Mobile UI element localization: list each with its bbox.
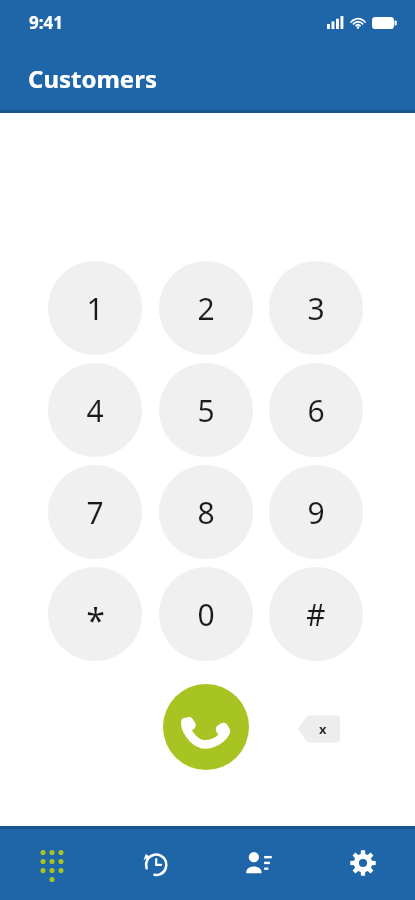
staticText: x [319,720,327,738]
button[interactable]: Contacts [207,826,311,900]
staticText: 8 [197,492,215,533]
staticText: 3 [307,288,325,329]
staticText: 2 [197,288,215,329]
button[interactable]: 0 [159,567,253,661]
button[interactable]: * [48,567,142,661]
staticText: 9 [307,492,325,533]
button[interactable]: 7 [48,465,142,559]
button[interactable]: 8 [159,465,253,559]
staticText: # [306,594,326,635]
button[interactable]: 3 [269,261,363,355]
staticText: 4 [86,390,104,431]
button[interactable]: 4 [48,363,142,457]
button[interactable]: 1 [48,261,142,355]
staticText: 5 [197,390,215,431]
button[interactable]: 5 [159,363,253,457]
button[interactable]: # [269,567,363,661]
button[interactable]: 9 [269,465,363,559]
staticText: Customers [28,62,157,95]
staticText: 6 [307,390,325,431]
button[interactable]: Delete [295,712,343,746]
staticText: 1 [86,288,104,329]
button[interactable]: Call [163,684,249,770]
staticText: 9:41 [29,11,63,34]
staticText: 0 [197,594,215,635]
staticText: * [86,597,105,643]
staticText: 7 [86,492,104,533]
button[interactable]: 6 [269,363,363,457]
button[interactable]: Dialpad [0,826,103,900]
button[interactable]: Settings [311,826,415,900]
button[interactable]: Recents [103,826,207,900]
button[interactable]: 2 [159,261,253,355]
